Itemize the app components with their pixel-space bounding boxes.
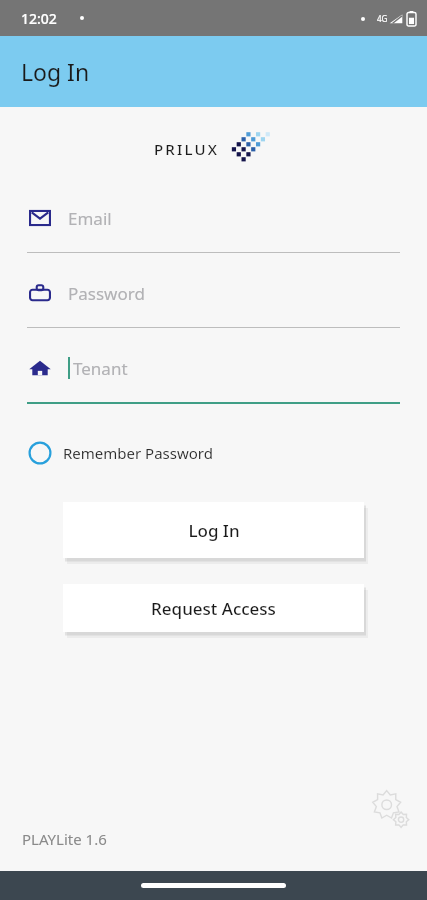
staticText: Request Access [151, 597, 276, 620]
staticText: Log In [188, 519, 240, 542]
button[interactable]: Request Access [63, 584, 364, 632]
staticText: PLAYLite 1.6 [22, 829, 107, 849]
button[interactable]: Password [27, 280, 400, 328]
staticText: PRILUX [154, 139, 220, 159]
button[interactable]: Log In [63, 502, 364, 558]
staticText: Remember Password [63, 443, 213, 463]
button[interactable]: Tenant [27, 355, 400, 404]
staticText: Email [68, 207, 112, 230]
staticText: 12:02 [21, 9, 57, 28]
staticText: Log In [21, 56, 90, 87]
staticText: 4G [377, 13, 388, 24]
button[interactable]: Settings [367, 787, 415, 835]
button[interactable]: Email [27, 205, 400, 253]
staticText: Password [68, 282, 145, 305]
staticText: Tenant [73, 357, 128, 380]
button[interactable]: Remember Password [27, 440, 213, 466]
